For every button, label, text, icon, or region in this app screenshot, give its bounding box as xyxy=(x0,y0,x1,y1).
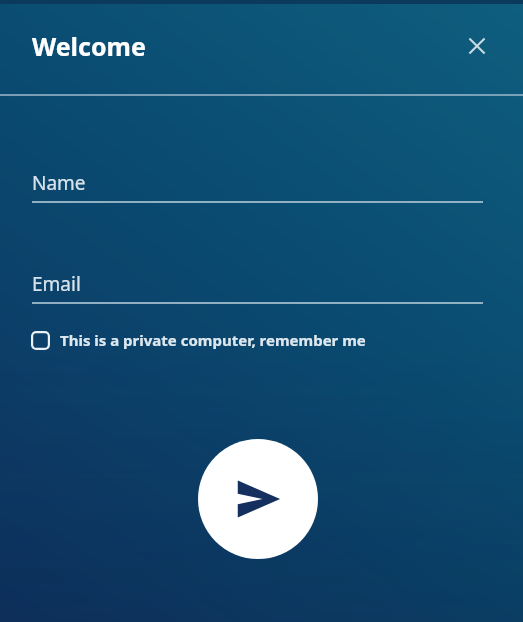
staticText: Welcome xyxy=(32,29,146,63)
button[interactable]: Close xyxy=(455,24,499,68)
button[interactable]: This is a private computer, remember me xyxy=(31,326,376,354)
button[interactable]: Name xyxy=(32,170,483,203)
staticText: Email xyxy=(32,271,81,297)
button[interactable]: Email xyxy=(32,271,483,304)
staticText: Name xyxy=(32,170,86,196)
button[interactable]: Send xyxy=(198,439,318,559)
staticText: This is a private computer, remember me xyxy=(60,330,366,350)
